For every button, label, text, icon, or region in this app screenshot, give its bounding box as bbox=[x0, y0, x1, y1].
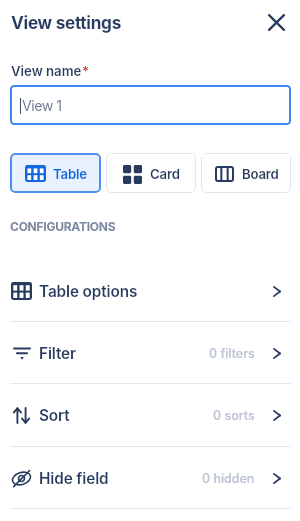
button[interactable]: Card bbox=[106, 153, 196, 193]
staticText: CONFIGURATIONS bbox=[10, 219, 116, 234]
button[interactable]: Filter bbox=[0, 322, 300, 384]
button[interactable]: View 1 bbox=[10, 85, 291, 125]
staticText: Filter bbox=[39, 344, 76, 363]
staticText: 0 filters bbox=[209, 346, 255, 361]
staticText: Table options bbox=[39, 282, 138, 301]
staticText: Hide field bbox=[39, 469, 109, 488]
staticText: Sort bbox=[39, 406, 70, 425]
staticText: 0 sorts bbox=[213, 408, 255, 423]
staticText: 0 hidden bbox=[202, 471, 255, 486]
staticText: Board bbox=[242, 166, 279, 182]
button[interactable]: Hide field bbox=[0, 447, 300, 509]
staticText: Card bbox=[150, 166, 180, 182]
staticText: * bbox=[82, 63, 90, 79]
staticText: View 1 bbox=[22, 97, 62, 114]
staticText: View name bbox=[11, 63, 82, 79]
staticText: Table bbox=[53, 166, 87, 182]
button[interactable]: Close bbox=[261, 7, 292, 38]
button[interactable]: Board bbox=[201, 153, 291, 193]
staticText: View settings bbox=[11, 12, 121, 33]
button[interactable]: Table options bbox=[0, 260, 300, 322]
button[interactable]: Sort bbox=[0, 384, 300, 446]
button[interactable]: Table bbox=[10, 153, 101, 193]
